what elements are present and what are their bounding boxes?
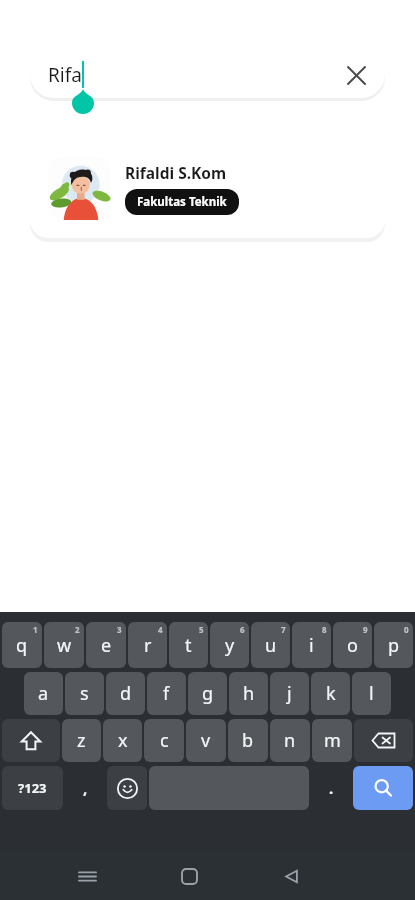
button[interactable]: f <box>147 672 186 715</box>
button[interactable]: u <box>251 622 290 668</box>
staticText: z <box>77 728 86 753</box>
staticText: k <box>326 681 336 706</box>
staticText: 1 <box>33 624 38 635</box>
button[interactable]: e <box>86 622 126 668</box>
staticText: 5 <box>199 624 204 635</box>
button[interactable]: p <box>374 622 413 668</box>
staticText: ?123 <box>18 779 47 797</box>
staticText: r <box>144 633 152 658</box>
staticText: o <box>347 633 358 658</box>
staticText: Rifaldi S.Kom <box>125 162 227 183</box>
button[interactable]: t <box>169 622 208 668</box>
staticText: 9 <box>363 624 368 635</box>
button[interactable]: v <box>186 719 226 762</box>
staticText: j <box>287 681 292 706</box>
staticText: s <box>80 681 89 706</box>
button[interactable]: Emoji <box>107 766 147 810</box>
button[interactable]: ?123 <box>2 766 63 810</box>
button[interactable]: z <box>62 719 101 762</box>
staticText: n <box>284 728 296 753</box>
staticText: p <box>388 633 400 658</box>
staticText: Rifa <box>48 62 82 88</box>
button[interactable]: y <box>210 622 249 668</box>
staticText: 3 <box>117 624 122 635</box>
staticText: 2 <box>75 624 80 635</box>
button[interactable]: x <box>103 719 142 762</box>
button[interactable]: Shift <box>2 719 60 762</box>
staticText: u <box>265 633 277 658</box>
staticText: a <box>38 681 49 706</box>
button[interactable]: i <box>292 622 331 668</box>
staticText: g <box>202 681 214 706</box>
button[interactable]: o <box>333 622 372 668</box>
staticText: v <box>201 728 211 753</box>
button[interactable]: g <box>188 672 227 715</box>
staticText: q <box>16 633 28 658</box>
button[interactable]: k <box>311 672 350 715</box>
staticText: 0 <box>404 624 409 635</box>
button[interactable]: l <box>352 672 391 715</box>
button[interactable]: d <box>106 672 145 715</box>
staticText: y <box>225 633 235 658</box>
staticText: h <box>243 681 255 706</box>
staticText: e <box>101 633 112 658</box>
staticText: 4 <box>158 624 163 635</box>
button[interactable]: q <box>2 622 42 668</box>
button[interactable]: Rifa <box>30 51 385 98</box>
button[interactable]: Search <box>353 766 413 810</box>
staticText: i <box>309 633 314 658</box>
staticText: m <box>324 728 341 753</box>
staticText: 8 <box>322 624 327 635</box>
staticText: l <box>369 681 374 706</box>
button[interactable]: Back <box>267 852 315 900</box>
staticText: . <box>329 778 334 798</box>
staticText: b <box>242 728 254 753</box>
staticText: t <box>185 633 192 658</box>
staticText: 7 <box>281 624 286 635</box>
button[interactable]: . <box>311 766 351 810</box>
staticText: d <box>120 681 132 706</box>
button[interactable]: Home <box>165 852 213 900</box>
button[interactable]: , <box>65 766 105 810</box>
button[interactable]: Recents <box>63 852 111 900</box>
button[interactable]: Rifaldi S.Kom <box>30 139 385 238</box>
staticText: , <box>83 778 88 798</box>
button[interactable]: m <box>312 719 352 762</box>
button[interactable]: n <box>270 719 310 762</box>
button[interactable]: r <box>128 622 167 668</box>
staticText: x <box>118 728 128 753</box>
button[interactable]: Clear search <box>341 60 371 90</box>
button[interactable]: c <box>144 719 184 762</box>
button[interactable]: Backspace <box>354 719 413 762</box>
button[interactable]: b <box>228 719 268 762</box>
button[interactable]: h <box>229 672 268 715</box>
button[interactable]: s <box>65 672 104 715</box>
staticText: 6 <box>240 624 245 635</box>
staticText: w <box>57 633 72 658</box>
button[interactable]: w <box>44 622 84 668</box>
staticText: Fakultas Teknik <box>137 194 227 210</box>
staticText: f <box>163 681 170 706</box>
button[interactable]: a <box>24 672 63 715</box>
staticText: c <box>160 728 169 753</box>
button[interactable]: Fakultas Teknik <box>125 189 239 215</box>
button[interactable]: j <box>270 672 309 715</box>
